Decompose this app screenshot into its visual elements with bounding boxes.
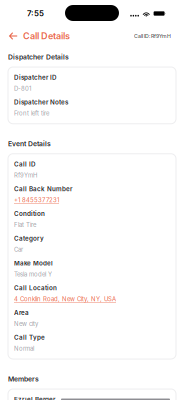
staticText: Category bbox=[14, 235, 44, 242]
staticText: Call ID: Rf9YmH bbox=[134, 33, 171, 39]
button[interactable]: Call Details bbox=[0, 30, 70, 41]
staticText: Rf9YmH bbox=[14, 172, 37, 179]
staticText: Car bbox=[14, 246, 23, 253]
staticText: Call Back Number bbox=[14, 185, 72, 193]
staticText: Condition bbox=[14, 210, 45, 218]
staticText: Flat Tire bbox=[14, 221, 36, 228]
staticText: Call Type bbox=[14, 334, 45, 341]
staticText: Event Details bbox=[8, 140, 51, 148]
staticText: Call Location bbox=[14, 284, 57, 292]
staticText: 4 Conklin Road, New City, NY, USA bbox=[14, 295, 116, 303]
staticText: 7:55 bbox=[27, 9, 44, 18]
staticText: New city bbox=[14, 320, 38, 327]
staticText: Area bbox=[14, 309, 29, 317]
staticText: Make Model bbox=[14, 259, 53, 267]
staticText: Call Details bbox=[23, 30, 70, 41]
staticText: Ezriel Berger bbox=[14, 396, 55, 400]
staticText: Front left tire bbox=[14, 110, 49, 117]
staticText: +1 8455377231 bbox=[14, 196, 59, 204]
staticText: Dispatcher Details bbox=[8, 53, 69, 61]
staticText: Dispatcher ID bbox=[14, 74, 57, 81]
staticText: Members bbox=[8, 375, 39, 383]
staticText: D-801 bbox=[14, 85, 31, 92]
staticText: Tesla model Y bbox=[14, 271, 52, 278]
staticText: Call ID bbox=[14, 160, 36, 168]
staticText: Normal bbox=[14, 345, 34, 352]
staticText: Dispatcher Notes bbox=[14, 98, 68, 106]
